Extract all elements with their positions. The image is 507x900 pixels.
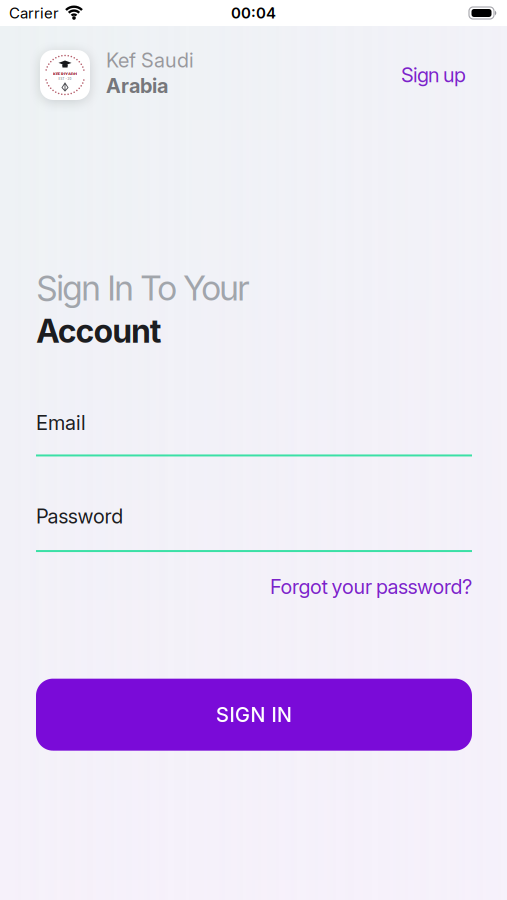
staticText: EST - 20 — [58, 77, 71, 81]
staticText: Password — [36, 504, 123, 528]
staticText: Sign up — [401, 63, 466, 87]
staticText: 00:04 — [231, 4, 276, 22]
staticText: Carrier — [9, 4, 59, 22]
button[interactable]: SIGN IN — [36, 679, 472, 751]
staticText: Forgot your password? — [270, 575, 472, 599]
staticText: Arabia — [106, 74, 168, 98]
staticText: SIGN IN — [216, 703, 292, 726]
staticText: Email — [36, 411, 86, 434]
staticText: Kef Saudi — [106, 48, 194, 72]
button[interactable]: Sign up — [401, 63, 466, 87]
button[interactable]: Forgot your password? — [270, 575, 472, 599]
staticText: Account — [36, 312, 162, 350]
staticText: KEF RIYADH — [53, 72, 77, 76]
staticText: Sign In To Your — [36, 268, 250, 308]
